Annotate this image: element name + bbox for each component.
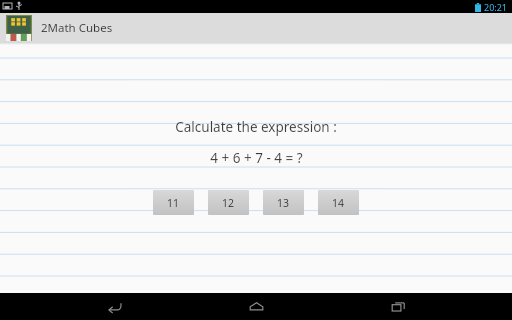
staticText: Calculate the expression : [175,118,337,136]
staticText: 14 [332,196,345,210]
staticText: 20:21 [484,1,508,13]
button[interactable]: 13 [263,190,304,215]
staticText: 11 [167,196,180,210]
button[interactable]: Back [86,293,142,320]
button[interactable]: 12 [208,190,249,215]
staticText: 12 [222,196,235,210]
staticText: 13 [277,196,290,210]
button[interactable]: Recent apps [370,293,426,320]
button[interactable]: 11 [153,190,194,215]
button[interactable]: 14 [318,190,359,215]
staticText: 4 + 6 + 7 - 4 = ? [210,149,303,167]
staticText: 2Math Cubes [41,20,113,36]
button[interactable]: Home [228,293,284,320]
